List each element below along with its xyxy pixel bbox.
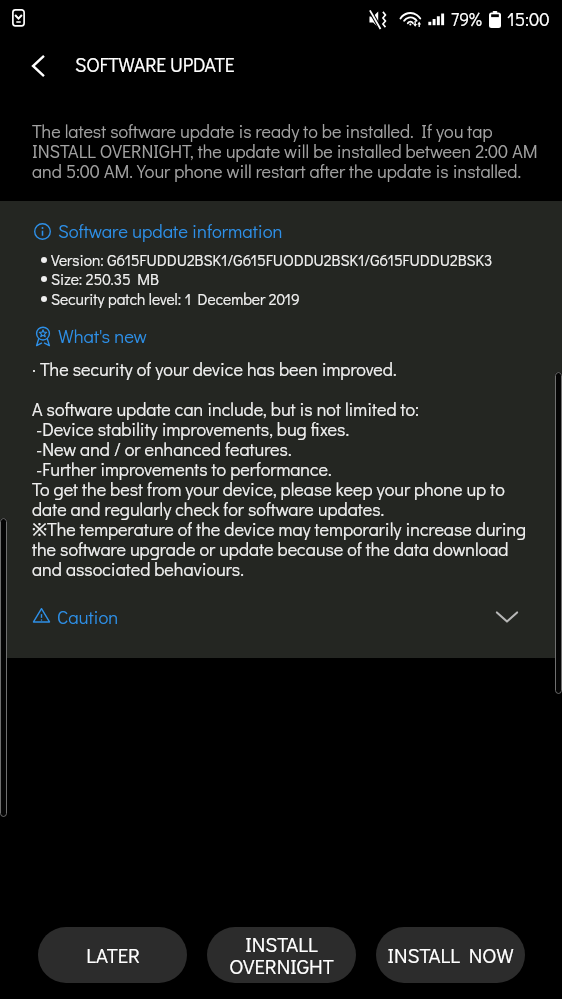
staticText: Software update information [58, 219, 283, 243]
staticText: The latest software update is ready to b… [32, 119, 542, 182]
button[interactable]: INSTALL NOW [376, 927, 525, 983]
staticText: 15:00 [507, 7, 550, 31]
staticText: SOFTWARE UPDATE [75, 52, 235, 78]
staticText: Caution [57, 605, 119, 629]
staticText: INSTALL NOW [387, 942, 514, 969]
staticText: · The security of your device has been i… [32, 357, 397, 381]
button[interactable]: Back [9, 38, 65, 94]
staticText: What's new [58, 324, 147, 348]
staticText: INSTALL OVERNIGHT [229, 931, 334, 980]
staticText: A software update can include, but is no… [32, 397, 536, 580]
button[interactable]: Caution [0, 592, 562, 640]
staticText: 79% [451, 8, 482, 31]
staticText: Version: G615FUDDU2BSK1/G615FUODDU2BSK1/… [51, 250, 493, 270]
button[interactable]: Software update information [24, 214, 294, 248]
button[interactable]: INSTALL OVERNIGHT [207, 927, 356, 983]
staticText: LATER [86, 942, 140, 969]
button[interactable]: What's new [24, 319, 174, 353]
staticText: Security patch level: 1 December 2019 [51, 289, 300, 309]
staticText: Size: 250.35 MB [51, 269, 159, 289]
button[interactable]: LATER [38, 927, 187, 983]
